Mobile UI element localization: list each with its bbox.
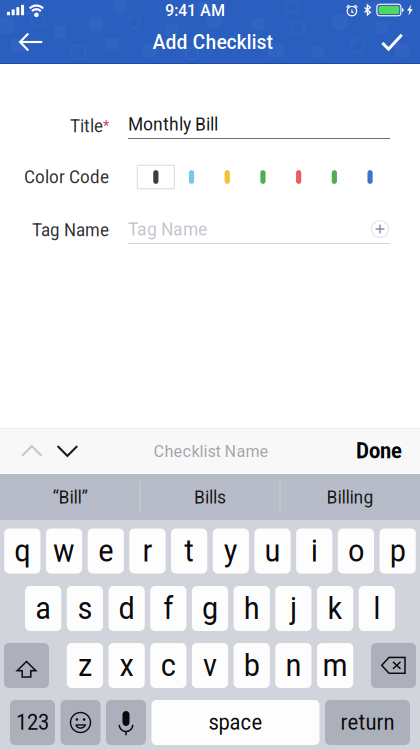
button[interactable]: l (359, 586, 395, 631)
button[interactable]: e (88, 528, 124, 573)
button[interactable]: d (108, 586, 145, 631)
staticText: Color Code (24, 166, 109, 188)
button[interactable]: Delete (371, 643, 416, 688)
button[interactable]: Color swatch (316, 162, 352, 192)
button[interactable]: w (46, 528, 82, 573)
staticText: * (103, 117, 109, 135)
staticText: u (265, 533, 281, 569)
button[interactable]: t (171, 528, 207, 573)
button[interactable]: k (317, 586, 353, 631)
button[interactable]: s (67, 586, 103, 631)
button[interactable]: Color swatch (138, 162, 174, 192)
staticText: a (35, 590, 51, 626)
staticText: f (163, 590, 173, 626)
staticText: space (208, 710, 262, 735)
staticText: z (78, 647, 92, 683)
staticText: h (244, 590, 260, 626)
button[interactable]: i (296, 528, 332, 573)
staticText: Title (70, 115, 103, 137)
button[interactable]: z (67, 643, 103, 688)
staticText: l (373, 590, 380, 626)
staticText: g (202, 590, 218, 626)
button[interactable]: Color swatch (281, 162, 316, 192)
button[interactable]: Back (0, 20, 62, 64)
button[interactable]: u (254, 528, 291, 573)
button[interactable]: j (275, 586, 311, 631)
button[interactable]: space (151, 700, 319, 745)
button[interactable]: n (275, 643, 311, 688)
button[interactable]: Save (364, 20, 420, 64)
button[interactable]: Previous field (10, 428, 54, 473)
button[interactable]: Color swatch (209, 162, 245, 192)
staticText: q (14, 533, 30, 569)
button[interactable]: Done (348, 428, 410, 473)
staticText: m (323, 647, 348, 683)
staticText: 123 (16, 710, 49, 735)
staticText: Checklist Name (153, 441, 268, 461)
staticText: Billing (326, 486, 373, 508)
staticText: t (184, 533, 194, 569)
button[interactable]: p (379, 528, 416, 573)
button[interactable]: v (192, 643, 228, 688)
button[interactable]: “Bill” (0, 474, 140, 520)
button[interactable]: r (129, 528, 166, 573)
button[interactable]: b (234, 643, 270, 688)
staticText: n (285, 647, 301, 683)
staticText: c (161, 647, 176, 683)
staticText: s (77, 590, 92, 626)
button[interactable]: Color swatch (352, 162, 388, 192)
button[interactable]: a (25, 586, 61, 631)
staticText: Bills (194, 486, 226, 508)
staticText: b (244, 647, 260, 683)
button[interactable]: m (317, 643, 353, 688)
staticText: o (348, 533, 364, 569)
button[interactable]: g (192, 586, 228, 631)
staticText: Done (356, 438, 402, 463)
button[interactable]: Dictation (106, 700, 146, 745)
button[interactable]: Billing (280, 474, 420, 520)
staticText: Tag Name (32, 219, 109, 241)
button[interactable]: Bills (140, 474, 280, 520)
staticText: “Bill” (52, 486, 87, 508)
staticText: d (119, 590, 135, 626)
staticText: v (203, 647, 217, 683)
button[interactable]: f (150, 586, 186, 631)
button[interactable]: Add tag (370, 219, 390, 239)
staticText: i (311, 533, 318, 569)
button[interactable]: 123 (10, 700, 55, 745)
button[interactable]: y (213, 528, 249, 573)
staticText: return (340, 710, 394, 735)
staticText: Tag Name (128, 218, 207, 240)
staticText: Add Checklist (152, 30, 273, 54)
staticText: Monthly Bill (128, 113, 218, 135)
button[interactable]: return (325, 700, 410, 745)
button[interactable]: h (234, 586, 270, 631)
staticText: w (53, 533, 75, 569)
button[interactable]: Next field (45, 428, 89, 473)
button[interactable]: q (4, 528, 40, 573)
staticText: x (120, 647, 134, 683)
button[interactable]: Color swatch (245, 162, 281, 192)
button[interactable]: x (108, 643, 145, 688)
button[interactable]: Emoji (60, 700, 100, 745)
staticText: p (390, 533, 406, 569)
staticText: 9:41 AM (165, 0, 225, 20)
button[interactable]: o (338, 528, 374, 573)
staticText: k (328, 590, 343, 626)
staticText: r (142, 533, 152, 569)
button[interactable]: Shift (4, 643, 49, 688)
button[interactable]: Color swatch (174, 162, 209, 192)
staticText: y (224, 533, 238, 569)
button[interactable]: c (150, 643, 186, 688)
staticText: e (98, 533, 113, 569)
staticText: j (290, 590, 297, 626)
